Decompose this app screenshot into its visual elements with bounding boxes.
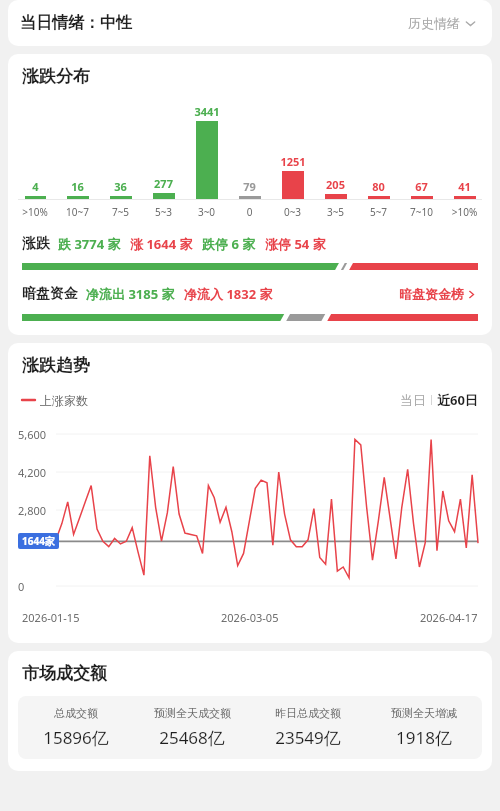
staticText: 涨跌分布	[22, 66, 90, 87]
staticText: 277	[154, 176, 173, 191]
staticText: 36	[114, 179, 127, 194]
button[interactable]: 当日	[400, 388, 478, 412]
staticText: 3~5	[314, 205, 357, 219]
staticText: 市场成交额	[22, 663, 107, 684]
staticText: 2026-01-15	[22, 610, 80, 625]
staticText: 3441	[194, 104, 220, 119]
staticText: 历史情绪	[408, 15, 460, 31]
staticText: 2,800	[18, 503, 47, 518]
staticText: 205	[326, 177, 345, 192]
staticText: 总成交额	[54, 706, 98, 720]
staticText: 10~7	[56, 205, 99, 219]
staticText: 5,600	[18, 427, 47, 442]
button[interactable]: 历史情绪	[404, 9, 480, 37]
staticText: 80	[372, 179, 385, 194]
staticText: 涨 1644 家	[130, 235, 193, 253]
staticText: 涨停 54 家	[265, 235, 326, 253]
staticText: 7~10	[400, 205, 443, 219]
staticText: 1251	[280, 154, 306, 169]
staticText: 预测全天增减	[391, 706, 457, 720]
staticText: 净流出 3185 家	[86, 285, 175, 303]
staticText: 0	[228, 205, 271, 219]
staticText: 预测全天成交额	[154, 706, 231, 720]
staticText: 23549亿	[275, 726, 341, 749]
staticText: 41	[458, 179, 471, 194]
staticText: 暗盘资金榜	[399, 286, 464, 302]
button[interactable]: 暗盘资金榜	[397, 284, 478, 304]
staticText: 79	[243, 179, 256, 194]
staticText: 2026-04-17	[420, 610, 478, 625]
staticText: 昨日总成交额	[275, 706, 341, 720]
staticText: 净流入 1832 家	[184, 285, 273, 303]
staticText: 0~3	[271, 205, 314, 219]
staticText: 16	[71, 179, 84, 194]
staticText: 上涨家数	[40, 393, 88, 408]
staticText: 1918亿	[396, 726, 452, 749]
staticText: >10%	[443, 205, 486, 219]
staticText: 跌 3774 家	[58, 235, 121, 253]
staticText: 2026-03-05	[221, 610, 279, 625]
staticText: 近60日	[437, 391, 478, 409]
staticText: 5~3	[142, 205, 185, 219]
staticText: 跌停 6 家	[202, 235, 256, 253]
staticText: 3~0	[185, 205, 228, 219]
staticText: 7~5	[99, 205, 142, 219]
staticText: 暗盘资金	[22, 285, 78, 303]
staticText: 0	[18, 579, 25, 594]
staticText: 当日情绪：中性	[20, 13, 132, 33]
staticText: 4,200	[18, 465, 47, 480]
staticText: 涨跌	[22, 235, 50, 253]
staticText: 67	[415, 179, 428, 194]
staticText: 15896亿	[43, 726, 109, 749]
staticText: 5~7	[357, 205, 400, 219]
staticText: >10%	[14, 205, 56, 219]
staticText: 涨跌趋势	[22, 355, 90, 376]
staticText: 25468亿	[159, 726, 225, 749]
staticText: 当日	[400, 392, 426, 408]
staticText: 1644家	[22, 534, 55, 548]
staticText: 4	[32, 179, 39, 194]
